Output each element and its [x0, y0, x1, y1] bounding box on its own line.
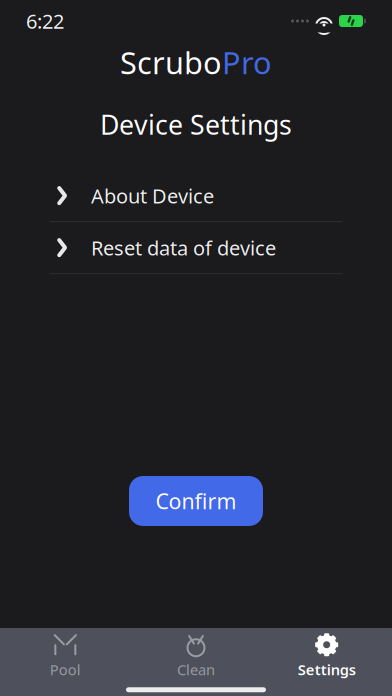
staticText: Reset data of device: [91, 234, 276, 261]
staticText: Device Settings: [100, 107, 292, 142]
staticText: Scrubo: [120, 42, 222, 83]
staticText: Pool: [50, 660, 81, 679]
staticText: Confirm: [155, 487, 236, 515]
button[interactable]: Reset data of device: [50, 222, 342, 273]
staticText: Settings: [298, 660, 356, 679]
staticText: Pro: [222, 42, 272, 83]
staticText: 6:22: [26, 8, 64, 34]
button[interactable]: Clean: [131, 633, 261, 679]
staticText: About Device: [91, 182, 214, 209]
button[interactable]: Confirm: [129, 476, 263, 526]
button[interactable]: About Device: [50, 170, 342, 221]
button[interactable]: Settings: [261, 633, 392, 679]
button[interactable]: Pool: [0, 633, 131, 679]
staticText: Clean: [177, 660, 215, 679]
